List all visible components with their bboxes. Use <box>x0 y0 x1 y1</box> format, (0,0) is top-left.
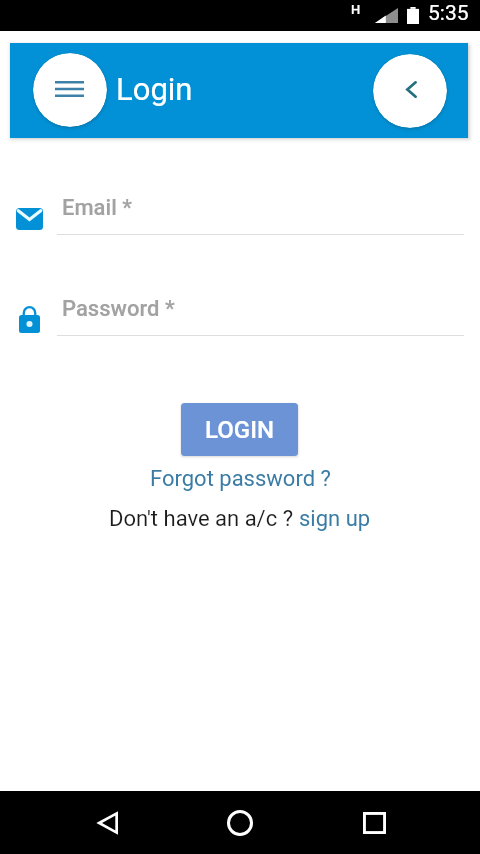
staticText: H <box>351 2 361 17</box>
button[interactable]: Back <box>373 54 447 128</box>
staticText: Forgot password ? <box>150 466 331 492</box>
button[interactable]: Email * <box>57 187 464 235</box>
button[interactable]: sign up <box>299 502 371 536</box>
staticText: Password * <box>62 296 175 322</box>
button[interactable]: Password * <box>57 288 464 336</box>
button[interactable]: Recent apps <box>344 791 404 854</box>
staticText: Login <box>116 71 193 107</box>
staticText: sign up <box>299 506 371 532</box>
button[interactable]: Forgot password ? <box>140 462 341 496</box>
staticText: Email * <box>62 195 132 221</box>
staticText: 5:35 <box>428 1 469 26</box>
button[interactable]: Back <box>77 791 137 854</box>
staticText: Don't have an a/c ? <box>109 506 299 532</box>
button[interactable]: Open navigation menu <box>33 53 107 127</box>
staticText: LOGIN <box>205 416 274 444</box>
button[interactable]: Home <box>210 791 270 854</box>
button[interactable]: LOGIN <box>181 403 298 456</box>
